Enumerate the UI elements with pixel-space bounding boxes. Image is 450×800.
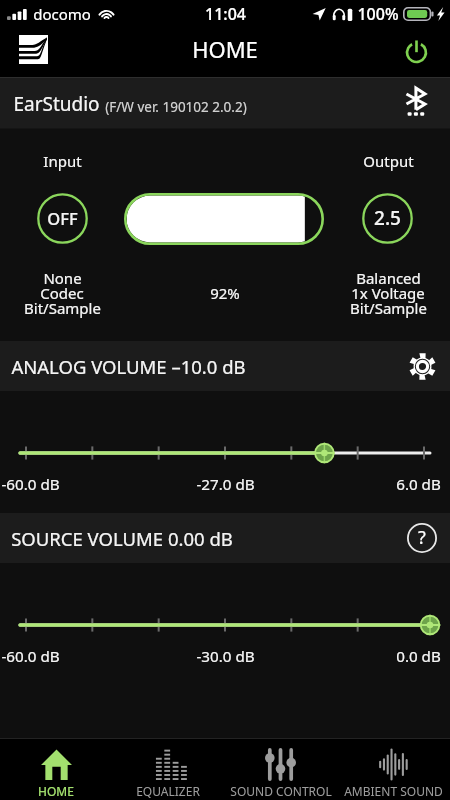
staticText: SOUND CONTROL [230,783,332,799]
staticText: 6.0 dB [396,474,441,495]
staticText: OFF [47,207,78,229]
button[interactable]: Menu [17,33,49,65]
staticText: -30.0 dB [196,646,255,667]
staticText: SOURCE VOLUME 0.00 dB [11,526,233,551]
button[interactable]: Help [404,520,440,556]
button[interactable]: SOUND CONTROL [224,739,337,800]
staticText: ? [418,525,426,550]
staticText: 92% [210,283,240,303]
button[interactable]: HOME [0,739,112,800]
button[interactable]: EQUALIZER [112,739,224,800]
staticText: 1x Voltage [351,283,425,303]
staticText: (F/W ver. 190102 2.0.2) [105,98,247,116]
staticText: Output [363,151,414,171]
staticText: ANALOG VOLUME –10.0 dB [11,354,246,379]
staticText: -60.0 dB [1,646,60,667]
staticText: AMBIENT SOUND [344,783,443,799]
button[interactable]: EarStudio [0,78,450,128]
staticText: None [43,268,82,288]
staticText: 100% [357,3,399,25]
button[interactable]: 2.5 [362,193,413,244]
button[interactable]: Power [400,35,432,67]
button[interactable] [124,193,324,245]
staticText: HOME [38,783,74,799]
staticText: docomo [33,4,91,24]
staticText: -60.0 dB [1,474,60,495]
button[interactable]: SOURCE VOLUME 0.00 dB [0,513,450,563]
button[interactable]: Bluetooth [398,87,432,121]
staticText: 0.0 dB [396,646,441,667]
button[interactable]: AMBIENT SOUND [337,739,450,800]
staticText: 11:04 [205,3,246,25]
staticText: Bit/Sample [24,298,101,318]
button[interactable]: OFF [37,193,88,244]
staticText: EQUALIZER [136,783,200,799]
staticText: Balanced [356,268,421,288]
button[interactable]: Settings [404,348,440,384]
staticText: Input [43,151,82,171]
staticText: Bit/Sample [350,298,427,318]
staticText: -27.0 dB [196,474,255,495]
staticText: EarStudio [13,91,100,117]
staticText: 2.5 [374,205,401,231]
staticText: HOME [192,34,258,64]
button[interactable]: ANALOG VOLUME –10.0 dB [0,341,450,391]
staticText: Codec [40,283,84,303]
